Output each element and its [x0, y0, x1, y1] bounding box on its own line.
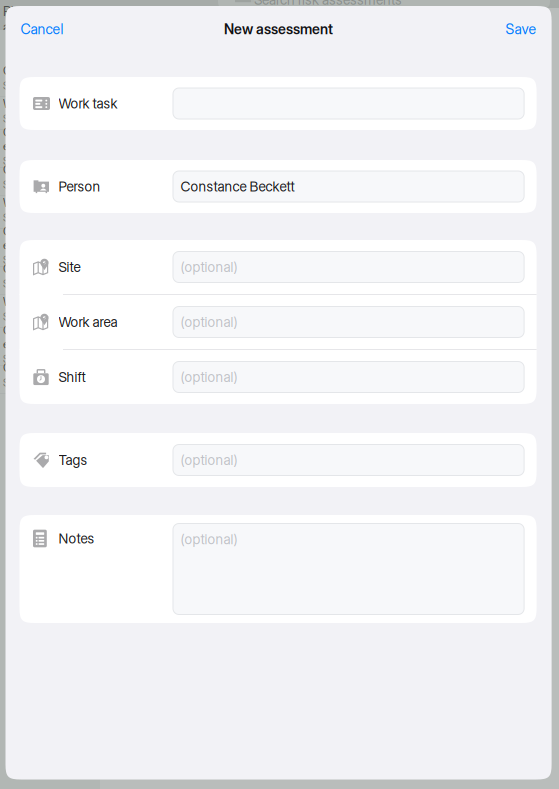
staticText: Site A · Draft	[3, 113, 54, 125]
staticText: Site	[58, 259, 80, 275]
staticText: Cancel	[20, 20, 63, 37]
button[interactable]: Work task	[19, 77, 537, 130]
staticText: Confined space entry	[3, 323, 80, 351]
staticText: Working at heights	[3, 295, 93, 309]
button[interactable]: Site	[19, 240, 537, 294]
staticText: Site A · Draft	[3, 377, 54, 389]
staticText: Grinding operations	[3, 361, 97, 375]
staticText: Site A · Draft	[3, 353, 54, 365]
staticText: (optional)	[180, 369, 237, 385]
staticText: (optional)	[180, 531, 237, 548]
staticText: Shift	[58, 369, 85, 385]
staticText: Site A · Draft	[3, 278, 54, 290]
staticText: (optional)	[180, 314, 237, 330]
button[interactable]: Person	[19, 160, 537, 213]
staticText: Search risk assessments	[254, 0, 402, 8]
staticText: (optional)	[180, 259, 237, 275]
button[interactable]: Tags	[19, 433, 537, 487]
button[interactable]: Notes	[19, 515, 537, 623]
staticText: Notes	[58, 530, 94, 547]
button[interactable]: Shift	[19, 350, 537, 404]
staticText: Site A · Draft	[3, 212, 54, 224]
staticText: Site A · Draft	[3, 80, 54, 92]
staticText: Risk assessments	[3, 3, 76, 34]
button[interactable]: Work area	[19, 295, 537, 349]
staticText: Work area	[58, 314, 117, 330]
staticText: (optional)	[180, 452, 237, 468]
staticText: Confined space entry	[3, 125, 80, 153]
staticText: Grinding operations	[3, 64, 97, 78]
staticText: Save	[506, 20, 537, 37]
staticText: Site A · Draft	[3, 155, 54, 167]
staticText: Site A · Draft	[3, 254, 54, 266]
button[interactable]: Cancel	[5, 7, 73, 51]
staticText: Site A · Draft	[3, 179, 54, 191]
staticText: Confined space entry	[3, 224, 80, 252]
staticText: New assessment	[224, 20, 333, 37]
staticText: Site A · Draft	[3, 311, 54, 323]
staticText: Grinding operations	[3, 262, 97, 276]
staticText: Constance Beckett	[180, 178, 294, 195]
staticText: Working at heights	[3, 97, 93, 111]
staticText: Work task	[58, 95, 117, 112]
button[interactable]: Save	[496, 7, 552, 51]
staticText: Working at heights	[3, 196, 93, 210]
staticText: Grinding operations	[3, 163, 97, 177]
staticText: Person	[58, 178, 100, 195]
staticText: Tags	[58, 452, 87, 468]
